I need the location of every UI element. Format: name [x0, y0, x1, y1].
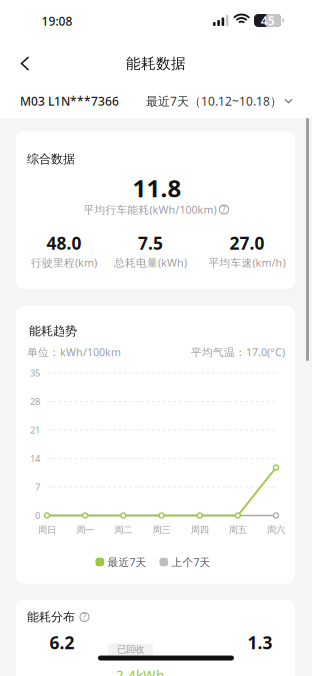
- staticText: 45: [261, 13, 275, 29]
- staticText: 平均气温：17.0(°C): [191, 345, 285, 359]
- staticText: 周日: [38, 524, 56, 536]
- staticText: 最近7天（10.12~10.18）: [146, 93, 282, 109]
- staticText: 周三: [152, 524, 170, 536]
- staticText: 已回收: [117, 644, 144, 655]
- staticText: 35: [30, 367, 40, 379]
- staticText: 27.0: [229, 231, 264, 254]
- staticText: 7.5: [138, 231, 163, 254]
- staticText: 能耗数据: [126, 54, 186, 72]
- staticText: 11.8: [132, 172, 181, 204]
- staticText: 7: [35, 481, 40, 493]
- staticText: ?: [222, 204, 226, 215]
- staticText: 周五: [229, 524, 247, 536]
- button[interactable]: Back: [8, 46, 42, 80]
- staticText: 周六: [267, 524, 285, 536]
- staticText: 周四: [191, 524, 209, 536]
- staticText: 最近7天: [107, 555, 146, 569]
- staticText: 上个7天: [171, 555, 210, 569]
- button[interactable]: 平均行车能耗说明: [219, 205, 228, 214]
- staticText: 平均车速(km/h): [208, 255, 285, 270]
- staticText: 28: [30, 395, 40, 408]
- staticText: 能耗趋势: [29, 324, 77, 338]
- staticText: 单位：kWh/100km: [27, 345, 121, 359]
- staticText: 2.4kWh: [116, 666, 164, 676]
- staticText: 0: [35, 509, 40, 522]
- staticText: 行驶里程(km): [31, 255, 97, 270]
- staticText: 14: [30, 452, 40, 465]
- staticText: 综合数据: [27, 152, 75, 166]
- staticText: ?: [82, 612, 86, 622]
- staticText: 19:08: [41, 13, 72, 29]
- staticText: 总耗电量(kWh): [114, 255, 187, 270]
- staticText: M03 L1N***7366: [20, 93, 119, 109]
- staticText: 1.3: [247, 631, 272, 654]
- button[interactable]: 最近7天（10.12~10.18）: [112, 89, 292, 113]
- button[interactable]: 能耗分布说明: [80, 612, 89, 621]
- staticText: 21: [30, 424, 40, 436]
- staticText: 周二: [114, 524, 132, 536]
- staticText: 周一: [76, 524, 94, 536]
- staticText: 48.0: [46, 231, 81, 254]
- staticText: 能耗分布: [27, 610, 75, 624]
- staticText: 6.2: [49, 631, 74, 654]
- staticText: 平均行车能耗(kWh/100km): [83, 202, 216, 217]
